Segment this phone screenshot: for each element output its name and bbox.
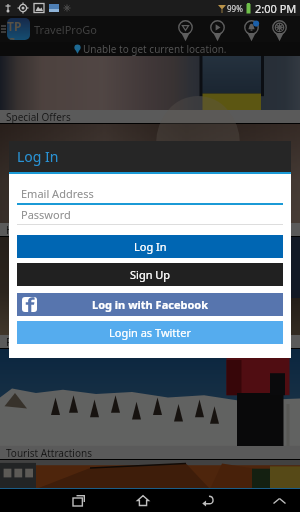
staticText: Hotels bbox=[6, 223, 37, 236]
button[interactable]: Sign Up bbox=[17, 263, 283, 286]
button[interactable]: Home bbox=[128, 489, 158, 512]
button[interactable]: Tourist Attractions bbox=[0, 349, 300, 459]
button[interactable]: Back bbox=[193, 489, 223, 512]
staticText: Log In bbox=[17, 147, 59, 166]
button[interactable]: TravelProGo logo bbox=[7, 18, 30, 40]
button[interactable]: Notifications bbox=[238, 16, 264, 42]
button[interactable]: Hotels bbox=[0, 124, 300, 236]
button[interactable]: Favourites bbox=[172, 16, 198, 42]
button[interactable]: Log in with Facebook bbox=[17, 293, 283, 316]
staticText: Tourist Attractions bbox=[6, 446, 92, 459]
button[interactable]: Email Address field bbox=[17, 186, 283, 205]
button[interactable]: Open navigation menu bbox=[0, 16, 7, 42]
staticText: Email Address bbox=[21, 186, 94, 201]
staticText: TravelProGo bbox=[34, 22, 97, 37]
button[interactable]: Videos bbox=[204, 16, 230, 42]
button[interactable]: Settings bbox=[266, 16, 292, 42]
button[interactable]: Login as Twitter bbox=[17, 321, 283, 344]
button[interactable]: Password field bbox=[17, 207, 283, 225]
staticText: TPG bbox=[7, 18, 30, 40]
staticText: Restaurants bbox=[6, 335, 63, 348]
staticText: Password bbox=[21, 207, 71, 222]
button[interactable]: Restaurants bbox=[0, 237, 300, 348]
staticText: Unable to get current location. bbox=[83, 42, 227, 56]
button[interactable]: Log In bbox=[17, 235, 283, 258]
button[interactable]: Recents bbox=[64, 489, 94, 512]
staticText: Login as Twitter bbox=[109, 325, 192, 340]
staticText: 2:00 PM bbox=[255, 1, 297, 16]
staticText: 99% bbox=[227, 3, 243, 14]
button[interactable]: Expand bbox=[265, 489, 293, 512]
button[interactable]: Special Offers bbox=[0, 56, 300, 123]
staticText: Log in with Facebook bbox=[92, 297, 209, 312]
staticText: Special Offers bbox=[6, 110, 71, 123]
staticText: Log In bbox=[134, 239, 167, 254]
staticText: Sign Up bbox=[130, 267, 171, 282]
